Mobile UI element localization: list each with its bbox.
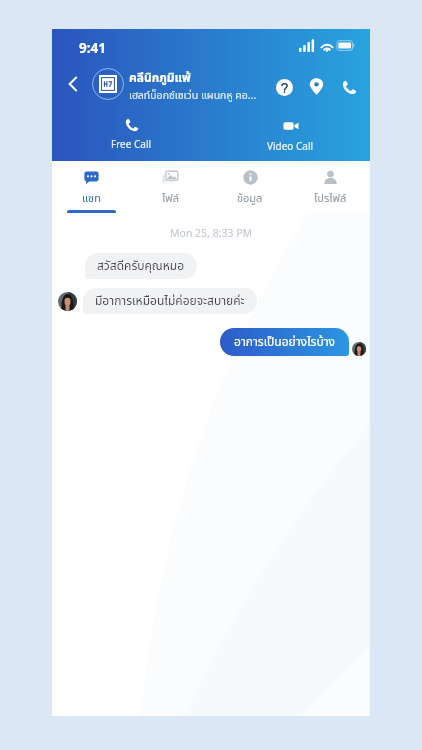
staticText: สวัสดีครับคุณหมอ — [97, 257, 185, 275]
staticText: 9:41 — [79, 39, 107, 59]
button[interactable]: โปรไฟล์ — [290, 161, 370, 213]
button[interactable]: ไฟล์ — [131, 161, 210, 213]
staticText: อาการเป็นอย่างไรบ้าง — [234, 333, 335, 351]
staticText: Mon 25, 8:33 PM — [170, 226, 253, 242]
staticText: มีอาการเหมือนไม่ค่อยจะสบายค่ะ — [95, 292, 245, 310]
button[interactable]: Back — [59, 70, 87, 98]
staticText: แชท — [82, 190, 101, 207]
button[interactable]: Location — [305, 75, 327, 97]
button[interactable]: Free Call — [52, 106, 211, 161]
staticText: Video Call — [267, 139, 314, 154]
staticText: โปรไฟล์ — [314, 190, 347, 207]
button[interactable]: Help — [273, 76, 295, 98]
button[interactable]: Call — [338, 76, 360, 98]
staticText: ข้อมูล — [237, 190, 263, 207]
button[interactable]: แชท — [52, 161, 131, 213]
button[interactable]: ข้อมูล — [210, 161, 290, 213]
staticText: Free Call — [111, 137, 152, 152]
staticText: ไฟล์ — [162, 190, 179, 207]
staticText: เฮลท์บ็อกซ์เซเว่น แผนกหู คอ... — [129, 88, 257, 104]
button[interactable]: Video Call — [211, 106, 370, 161]
staticText: คลีนิกภูมิแพ้ — [129, 69, 191, 87]
